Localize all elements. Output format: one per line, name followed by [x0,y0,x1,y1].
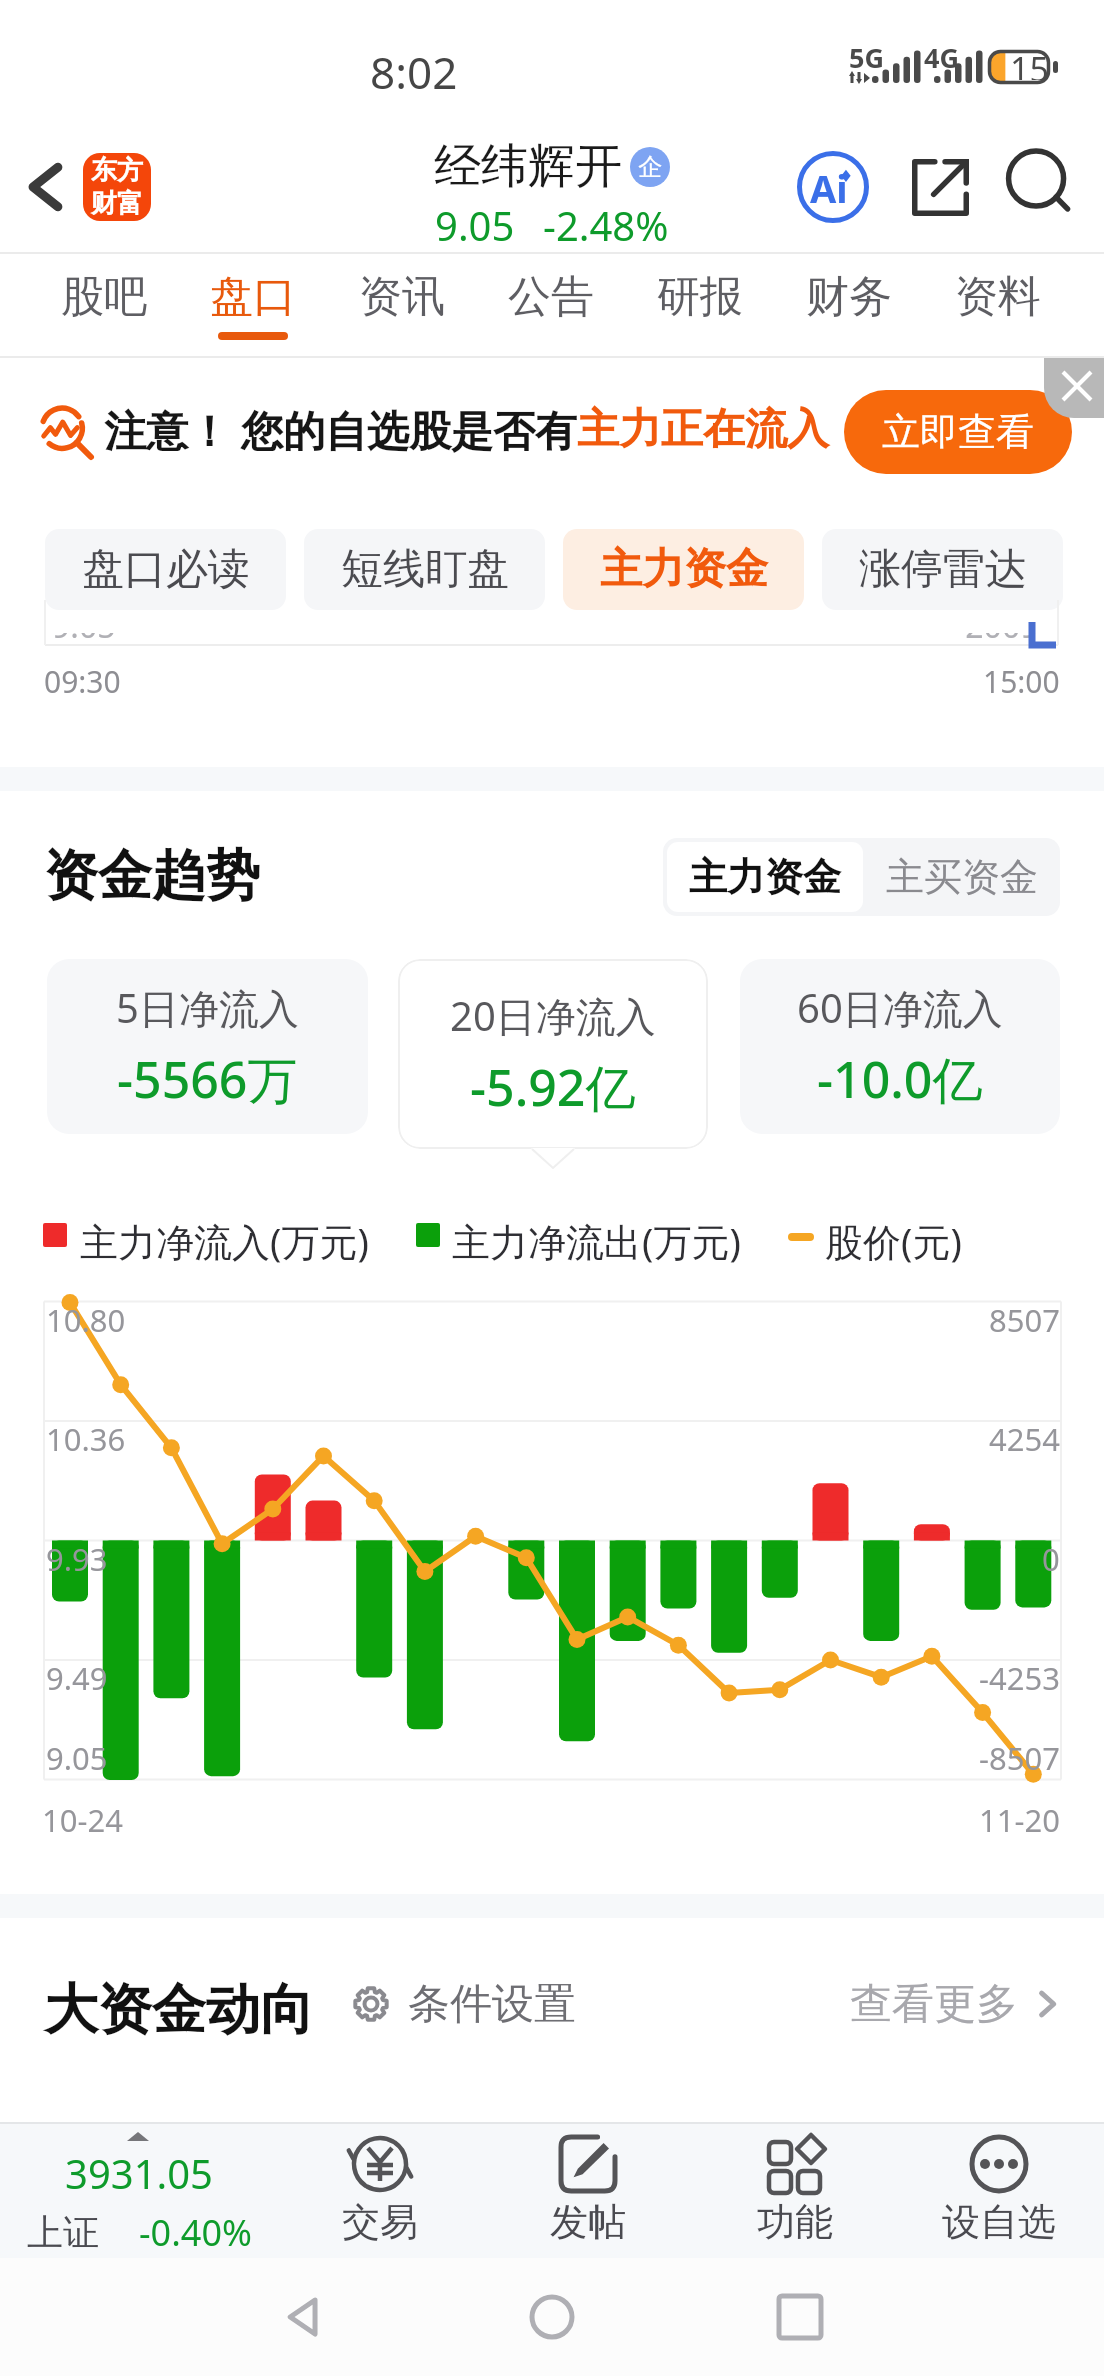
staticText: 东方 [91,154,143,187]
button[interactable]: 条件设置 [352,1966,576,2042]
staticText: 5G [849,39,884,76]
staticText: 主力正在流入 [577,403,829,456]
staticText: 条件设置 [408,1978,576,2031]
staticText: 主力净流入(万元) [80,1215,369,1267]
staticText: 4G [924,39,959,76]
staticText: 立即查看 [882,408,1034,456]
staticText: 主力净流出(万元) [452,1215,741,1267]
staticText: 交易 [342,2198,418,2246]
staticText: -5566万 [117,1045,298,1113]
button[interactable]: 盘口 [193,254,313,358]
staticText: 股吧 [61,270,147,324]
button[interactable]: Recents [740,2258,860,2376]
button[interactable]: Home [492,2258,612,2376]
staticText: -5.92亿 [470,1053,636,1121]
staticText: 资料 [955,270,1041,324]
staticText: 8:02 [370,42,458,102]
button[interactable]: Share [897,123,983,251]
staticText: 设自选 [942,2198,1056,2246]
button[interactable]: 20日净流入 [398,959,708,1149]
staticText: 9.49 [46,1657,108,1699]
staticText: 资讯 [359,270,445,324]
staticText: 主力资金 [689,853,841,901]
staticText: 盘口 [210,270,296,324]
button[interactable]: 5日净流入 [47,959,368,1134]
button[interactable]: 60日净流入 [740,959,1060,1134]
staticText: 企 [638,152,662,182]
staticText: 10.36 [46,1418,126,1460]
staticText: -8507 [979,1737,1060,1779]
button[interactable]: 设自选 [909,2122,1089,2258]
button[interactable]: East Money [83,153,151,221]
button[interactable]: 主力资金 [667,842,863,912]
staticText: 大资金动向 [44,1976,314,2044]
staticText: 8507 [989,1299,1060,1341]
staticText: Ai [810,162,848,214]
button[interactable]: 盘口必读 [45,529,286,610]
staticText: 9.05 [46,1737,108,1779]
button[interactable]: 资讯 [342,254,462,358]
staticText: 注意！ 您的自选股是否有 [104,401,577,458]
button[interactable]: 主买资金 [863,838,1060,916]
button[interactable]: 发帖 [498,2122,678,2258]
button[interactable]: 功能 [705,2122,885,2258]
staticText: 3931.05 [65,2146,213,2200]
button[interactable]: 立即查看 [844,390,1072,474]
button[interactable]: 短线盯盘 [304,529,545,610]
button[interactable]: 股吧 [44,254,164,358]
staticText: 财富 [91,187,143,220]
staticText: 股价(元) [825,1215,962,1267]
staticText: 9.93 [46,1538,108,1580]
staticText: 查看更多 [850,1978,1018,2031]
staticText: 9.05 [52,604,116,648]
staticText: -4253 [979,1657,1060,1699]
staticText: 研报 [657,270,743,324]
staticText: 20日净流入 [450,988,656,1043]
button[interactable]: 3931.05 [0,2122,278,2258]
staticText: 09:30 [44,661,121,702]
staticText: 9.05 [435,198,515,252]
button[interactable]: 财务 [789,254,909,358]
staticText: 功能 [757,2198,833,2246]
staticText: -2009 [955,604,1039,648]
button[interactable]: 主力资金 [563,529,804,610]
staticText: 上证 [27,2210,99,2255]
button[interactable]: Search [999,120,1085,252]
staticText: 15:00 [983,661,1060,702]
staticText: 10.80 [46,1299,126,1341]
staticText: 涨停雷达 [859,543,1027,596]
button[interactable]: 研报 [640,254,760,358]
button[interactable]: 交易 [290,2122,470,2258]
staticText: 主买资金 [886,853,1038,901]
staticText: 5日净流入 [116,980,299,1035]
staticText: 资金趋势 [44,842,260,910]
staticText: 4254 [989,1418,1060,1460]
staticText: 短线盯盘 [341,543,509,596]
staticText: -10.0亿 [817,1045,983,1113]
staticText: 60日净流入 [797,980,1003,1035]
staticText: -2.48% [543,198,669,252]
staticText: 10-24 [42,1799,123,1841]
staticText: 0 [1042,1538,1060,1580]
staticText: 财务 [806,270,892,324]
staticText: -0.40% [139,2208,252,2257]
staticText: 11-20 [979,1799,1060,1841]
button[interactable]: Close [1044,358,1104,418]
staticText: 盘口必读 [82,543,250,596]
button[interactable]: 涨停雷达 [822,529,1063,610]
button[interactable]: 资料 [938,254,1058,358]
staticText: 发帖 [550,2198,626,2246]
button[interactable]: AI assistant [790,123,876,251]
staticText: 主力资金 [600,543,768,596]
staticText: 公告 [508,270,594,324]
button[interactable]: 公告 [491,254,611,358]
staticText: 经纬辉开 [434,137,622,196]
staticText: 15 [1010,46,1049,80]
button[interactable]: 查看更多 [850,1966,1064,2042]
button[interactable]: Back [244,2258,364,2376]
button[interactable]: Back [8,120,82,254]
